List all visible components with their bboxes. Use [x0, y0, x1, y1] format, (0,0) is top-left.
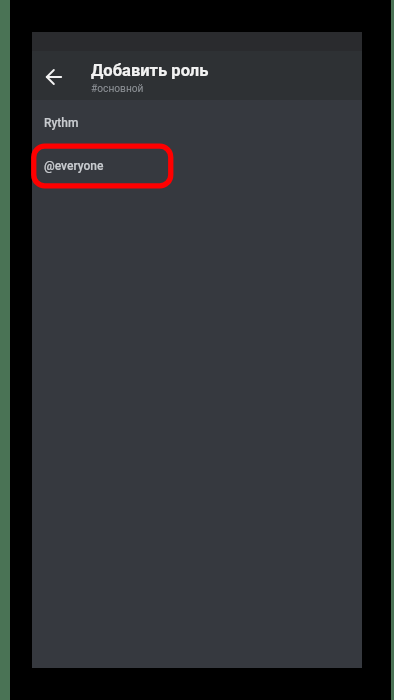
staticText: Rythm — [44, 116, 79, 130]
button[interactable]: Back — [32, 55, 76, 99]
staticText: @everyone — [44, 159, 104, 173]
staticText: #основной — [91, 83, 144, 95]
button[interactable]: @everyone — [32, 130, 362, 175]
staticText: Добавить роль — [91, 61, 209, 80]
